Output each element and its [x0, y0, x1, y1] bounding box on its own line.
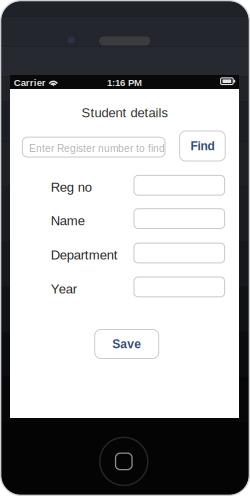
staticText: Carrier — [14, 77, 46, 88]
staticText: Student details — [81, 105, 167, 120]
staticText: Name — [51, 213, 85, 228]
staticText: Find — [190, 139, 214, 153]
staticText: Department — [51, 248, 118, 262]
staticText: Reg no — [51, 180, 92, 195]
button[interactable]: Save — [95, 329, 159, 358]
staticText: Save — [112, 337, 141, 351]
staticText: 1:16 PM — [107, 77, 142, 88]
button[interactable]: Find — [180, 131, 225, 161]
staticText: Year — [51, 282, 77, 296]
staticText: Enter Register number to find — [29, 143, 165, 154]
